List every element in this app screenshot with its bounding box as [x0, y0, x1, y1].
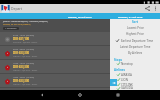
- staticText: AIRASIA - QZ 7514 - Direct: [13, 69, 38, 72]
- staticText: 1 Passenger: [5, 27, 17, 30]
- staticText: AIRASIA - QZ 7510 - Direct: [13, 55, 38, 58]
- staticText: 19:05 - 22:00 (1h 55m): [13, 76, 35, 79]
- staticText: 06:00 - 08:55 (1h 55m): [13, 48, 35, 51]
- staticText: IDR 633,300: [13, 79, 30, 83]
- button[interactable]: Nonstop: [110, 61, 160, 66]
- staticText: IDR 633,300: [13, 51, 30, 55]
- button[interactable]: Highest Price: [110, 31, 160, 36]
- staticText: AIRASIA - QZ 7520 - Direct: [13, 83, 38, 86]
- button[interactable]: Airlines: [110, 67, 160, 72]
- button[interactable]: 19:05 - 22:00 (1h 55m): [0, 74, 160, 88]
- button[interactable]: 06:00 - 08:55 (1h 55m): [0, 46, 160, 60]
- button[interactable]: 07:45 - 10:45 (2h 00m): [0, 32, 160, 46]
- button[interactable]: Back: [37, 90, 47, 100]
- staticText: LION: [121, 78, 128, 82]
- button[interactable]: Recent apps: [113, 90, 123, 100]
- staticText: GARUDA: [121, 86, 133, 90]
- button[interactable]: CITILINK: [110, 82, 160, 87]
- staticText: Stops: [114, 58, 122, 62]
- button[interactable]: Latest Departure Time: [110, 44, 160, 49]
- staticText: CITILINK: [121, 83, 133, 87]
- staticText: Highest Price: [126, 32, 144, 36]
- button[interactable]: More options: [152, 5, 159, 12]
- button[interactable]: 1 Passenger: [3, 27, 19, 30]
- staticText: IDR 631,100: [13, 37, 30, 41]
- staticText: Jakarta - Cengkareng(CGK) - Denpasar, Ba…: [3, 20, 48, 23]
- staticText: Monday, 31 Oct 2016: [118, 15, 143, 18]
- staticText: 13:30 - 16:25 (1h 55m): [13, 62, 35, 65]
- button[interactable]: AIRASIA: [110, 72, 160, 77]
- button[interactable]: Monday, 31 Oct 2016: [110, 13, 160, 19]
- button[interactable]: Sort: [110, 19, 160, 24]
- button[interactable]: Earliest Departure Time: [110, 38, 160, 43]
- staticText: By Airlines: [128, 51, 143, 55]
- button[interactable]: Sunday, 30 Oct 2016: [0, 13, 110, 19]
- button[interactable]: 13:30 - 16:25 (1h 55m): [0, 60, 160, 74]
- staticText: IDR 633,300: [13, 65, 30, 69]
- button[interactable]: Share: [143, 4, 152, 13]
- button[interactable]: GARUDA: [110, 86, 160, 90]
- staticText: Sunday, 30 Oct 2016: [68, 15, 92, 18]
- staticText: Depart: [11, 6, 22, 11]
- button[interactable]: Stops: [110, 57, 160, 62]
- button[interactable]: Open filters: [110, 79, 117, 86]
- button[interactable]: Lowest Price: [110, 25, 160, 30]
- staticText: Latest Departure Time: [120, 45, 151, 49]
- button[interactable]: LION: [110, 77, 160, 82]
- staticText: CITILINK - QG 682 - Direct: [13, 41, 38, 44]
- staticText: 07:45 - 10:45 (2h 00m): [13, 34, 35, 37]
- staticText: Nonstop: [121, 62, 133, 66]
- button[interactable]: By Airlines: [110, 50, 160, 55]
- staticText: AIRASIA: [121, 73, 132, 77]
- staticText: Sunday, 30 Oct 2016 (Depart): [3, 23, 31, 26]
- staticText: Sort: [132, 20, 138, 24]
- staticText: Earliest Departure Time: [121, 39, 154, 43]
- staticText: Lowest Price: [127, 26, 144, 30]
- staticText: Airlines: [114, 68, 125, 72]
- button[interactable]: Home: [75, 90, 85, 100]
